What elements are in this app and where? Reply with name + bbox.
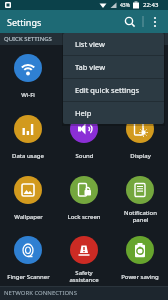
staticText: Tab view: [75, 62, 106, 72]
button[interactable]: Sound: [56, 115, 112, 171]
button[interactable]: Notification panel: [112, 176, 168, 232]
staticText: 22:43: [143, 1, 159, 9]
staticText: Data usage: [12, 152, 44, 160]
button[interactable]: List view: [63, 33, 164, 55]
staticText: Display: [130, 152, 151, 160]
staticText: Settings: [7, 16, 42, 28]
button[interactable]: Data usage: [0, 115, 56, 171]
button[interactable]: Tab view: [63, 56, 164, 78]
button[interactable]: Wi-Fi: [0, 54, 56, 110]
staticText: Safety assistance: [69, 269, 99, 284]
button[interactable]: Edit quick settings: [63, 79, 164, 101]
staticText: Wi-Fi: [21, 91, 35, 99]
staticText: Help: [75, 108, 92, 118]
button[interactable]: Help: [63, 102, 164, 124]
button[interactable]: [148, 15, 162, 29]
button[interactable]: Safety assistance: [56, 236, 112, 292]
staticText: Finger Scanner: [7, 273, 50, 281]
staticText: Edit quick settings: [75, 85, 140, 95]
button[interactable]: Lock screen: [56, 176, 112, 232]
button[interactable]: [122, 14, 138, 30]
button[interactable]: Finger Scanner: [0, 236, 56, 292]
staticText: Lock screen: [67, 213, 101, 221]
button[interactable]: Display: [112, 115, 168, 171]
staticText: Notification panel: [124, 209, 157, 224]
staticText: NETWORK CONNECTIONS: [4, 289, 77, 297]
staticText: List view: [75, 39, 105, 49]
staticText: Sound: [75, 152, 94, 160]
staticText: 43%: [120, 2, 130, 9]
button[interactable]: Wallpaper: [0, 176, 56, 232]
button[interactable]: Power saving: [112, 236, 168, 292]
staticText: Power saving: [121, 273, 159, 281]
staticText: Wallpaper: [14, 213, 43, 221]
staticText: QUICK SETTINGS: [4, 35, 52, 43]
